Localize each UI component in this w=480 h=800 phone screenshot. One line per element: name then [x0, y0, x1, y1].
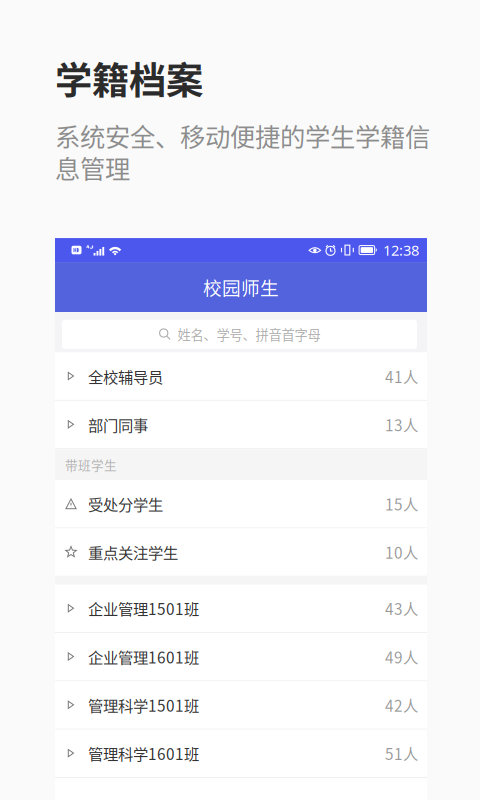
staticText: 全校辅导员: [88, 365, 163, 387]
staticText: 15人: [385, 493, 418, 515]
staticText: 43人: [385, 597, 418, 619]
staticText: 企业管理1501班: [88, 597, 199, 619]
staticText: 51人: [385, 742, 418, 764]
staticText: 姓名、学号、拼音首字母: [177, 325, 320, 344]
staticText: 系统安全、移动便捷的学生学籍信: [55, 117, 430, 154]
staticText: 学籍档案: [55, 51, 203, 105]
button[interactable]: 全校辅导员: [55, 353, 427, 401]
staticText: 息管理: [55, 149, 130, 186]
staticText: 管理科学1601班: [88, 742, 199, 764]
button[interactable]: 管理科学1501班: [55, 681, 427, 730]
staticText: 12:38: [383, 240, 419, 260]
button[interactable]: 重点关注学生: [55, 528, 427, 577]
staticText: 受处分学生: [88, 493, 163, 515]
button[interactable]: 管理科学1601班: [55, 730, 427, 778]
staticText: 42人: [385, 694, 418, 716]
staticText: 重点关注学生: [88, 541, 178, 563]
button[interactable]: 企业管理1501班: [55, 585, 427, 633]
staticText: 部门同事: [88, 413, 148, 436]
staticText: 管理科学1501班: [88, 694, 199, 716]
button[interactable]: 受处分学生: [55, 480, 427, 528]
staticText: 13人: [385, 413, 418, 436]
staticText: 校园师生: [203, 273, 279, 300]
staticText: 10人: [385, 541, 418, 563]
staticText: 企业管理1601班: [88, 646, 199, 668]
button[interactable]: 企业管理1601班: [55, 633, 427, 681]
staticText: 49人: [385, 646, 418, 668]
staticText: 41人: [385, 365, 418, 387]
button[interactable]: 部门同事: [55, 401, 427, 449]
staticText: 带班学生: [65, 455, 117, 474]
